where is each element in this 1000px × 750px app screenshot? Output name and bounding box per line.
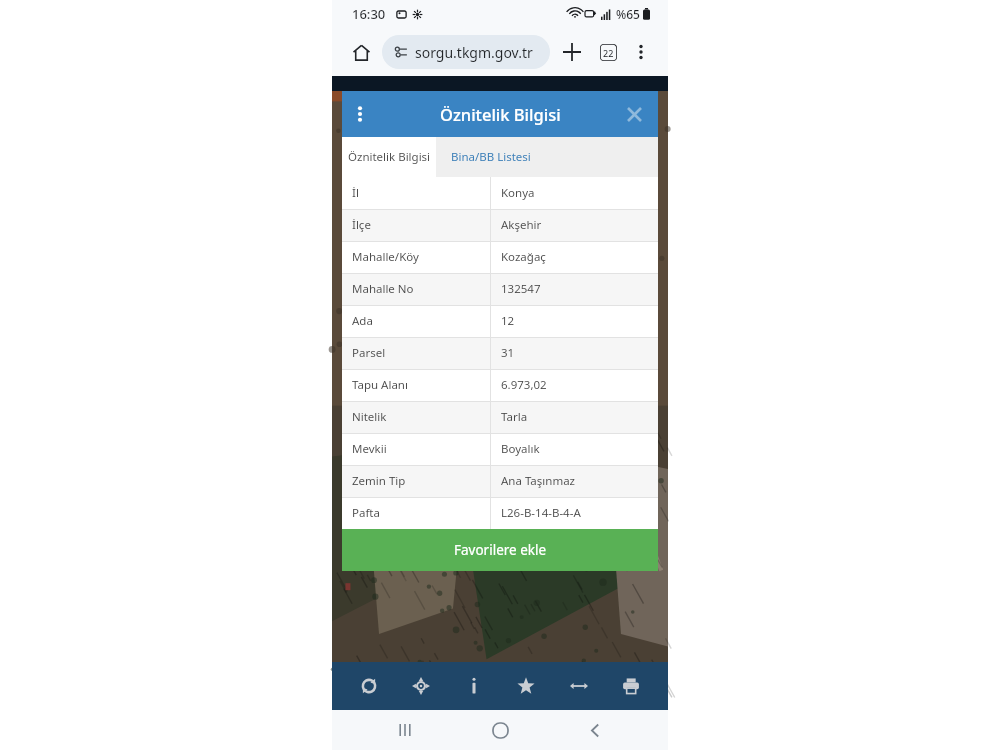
button[interactable]: Refresh: [347, 664, 391, 708]
button[interactable]: Home: [478, 710, 522, 750]
staticText: Tapu Alanı: [352, 377, 408, 393]
button[interactable]: Recent apps: [383, 710, 427, 750]
button[interactable]: Tapu Alanı: [342, 369, 658, 401]
staticText: %65: [616, 6, 640, 22]
button[interactable]: İl: [342, 177, 658, 209]
staticText: Tarla: [501, 409, 528, 425]
staticText: Öznitelik Bilgisi: [348, 149, 431, 165]
button[interactable]: Nitelik: [342, 401, 658, 433]
button[interactable]: Mahalle No: [342, 273, 658, 305]
button[interactable]: Measure: [557, 664, 601, 708]
staticText: sorgu.tkgm.gov.tr: [415, 43, 533, 62]
staticText: Mahalle No: [352, 281, 414, 297]
button[interactable]: Favorilere ekle: [342, 529, 658, 571]
staticText: Mahalle/Köy: [352, 249, 419, 265]
staticText: Öznitelik Bilgisi: [440, 103, 561, 125]
staticText: Favorilere ekle: [454, 541, 547, 559]
button[interactable]: New tab: [556, 36, 588, 68]
staticText: Parsel: [352, 345, 386, 361]
staticText: Akşehir: [501, 217, 542, 233]
staticText: Pafta: [352, 505, 380, 521]
button[interactable]: Home: [344, 35, 378, 69]
button[interactable]: Pafta: [342, 497, 658, 529]
staticText: Konya: [501, 185, 535, 201]
staticText: Ana Taşınmaz: [501, 473, 576, 489]
button[interactable]: Bina/BB Listesi: [436, 137, 546, 177]
staticText: 22: [603, 47, 614, 59]
button[interactable]: Öznitelik Bilgisi: [342, 137, 436, 177]
staticText: 16:30: [352, 5, 386, 23]
staticText: İlçe: [352, 217, 371, 233]
button[interactable]: Print: [609, 664, 653, 708]
button[interactable]: sorgu.tkgm.gov.tr: [382, 35, 550, 69]
staticText: Bina/BB Listesi: [451, 149, 531, 165]
staticText: Boyalık: [501, 441, 540, 457]
button[interactable]: Parsel: [342, 337, 658, 369]
button[interactable]: Favorites: [504, 664, 548, 708]
staticText: İl: [352, 185, 359, 201]
staticText: Kozağaç: [501, 249, 546, 265]
staticText: Mevkii: [352, 441, 387, 457]
staticText: Nitelik: [352, 409, 387, 425]
staticText: 132547: [501, 281, 541, 297]
button[interactable]: Ada: [342, 305, 658, 337]
button[interactable]: Close: [620, 100, 648, 128]
staticText: Ada: [352, 313, 373, 329]
button[interactable]: Locate: [399, 664, 443, 708]
button[interactable]: Mevkii: [342, 433, 658, 465]
button[interactable]: İlçe: [342, 209, 658, 241]
button[interactable]: Zemin Tip: [342, 465, 658, 497]
staticText: 31: [501, 345, 515, 361]
staticText: 12: [501, 313, 515, 329]
button[interactable]: Back: [573, 710, 617, 750]
staticText: Zemin Tip: [352, 473, 406, 489]
button[interactable]: Info: [452, 664, 496, 708]
button[interactable]: Tabs: 22: [592, 36, 624, 68]
staticText: 6.973,02: [501, 377, 547, 393]
staticText: L26-B-14-B-4-A: [501, 505, 581, 521]
button[interactable]: Menu: [342, 96, 378, 132]
button[interactable]: More options: [626, 37, 656, 67]
button[interactable]: Mahalle/Köy: [342, 241, 658, 273]
